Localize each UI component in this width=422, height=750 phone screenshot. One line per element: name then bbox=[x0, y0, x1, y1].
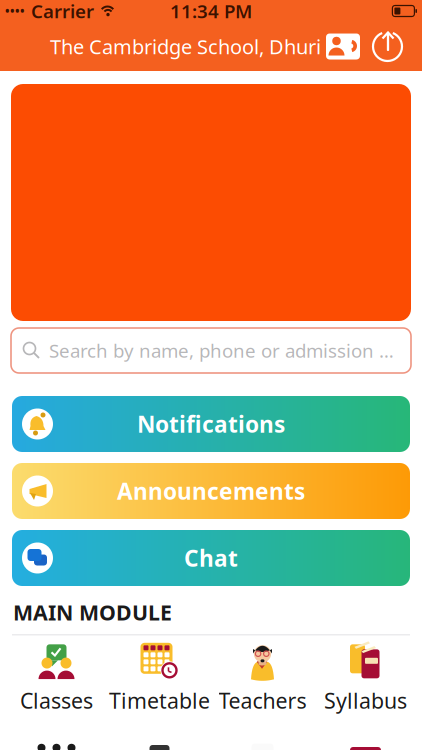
staticText: Classes bbox=[20, 686, 93, 715]
staticText: Notifications bbox=[137, 409, 285, 439]
staticText: Search by name, phone or admission num… bbox=[49, 338, 403, 363]
button[interactable]: Notifications bbox=[0, 396, 422, 452]
button[interactable]: Syllabus bbox=[314, 642, 417, 715]
button[interactable]: Timetable bbox=[108, 642, 211, 715]
button[interactable]: Contacts bbox=[325, 31, 361, 61]
staticText: The Cambridge School, Dhuri bbox=[50, 33, 321, 60]
staticText: Syllabus bbox=[324, 686, 407, 715]
staticText: Carrier bbox=[31, 0, 94, 23]
staticText: Teachers bbox=[218, 686, 306, 715]
staticText: Chat bbox=[184, 543, 238, 573]
staticText: 11:34 PM bbox=[170, 0, 252, 23]
staticText: Announcements bbox=[117, 476, 305, 506]
button[interactable]: Log out bbox=[370, 28, 406, 64]
staticText: •••• bbox=[5, 3, 25, 19]
button[interactable]: Classes bbox=[5, 642, 108, 715]
button[interactable]: Teachers bbox=[211, 642, 314, 715]
button[interactable]: Chat bbox=[0, 530, 422, 586]
staticText: MAIN MODULE bbox=[13, 598, 172, 626]
button[interactable]: Announcements bbox=[0, 463, 422, 519]
staticText: Timetable bbox=[109, 686, 210, 715]
